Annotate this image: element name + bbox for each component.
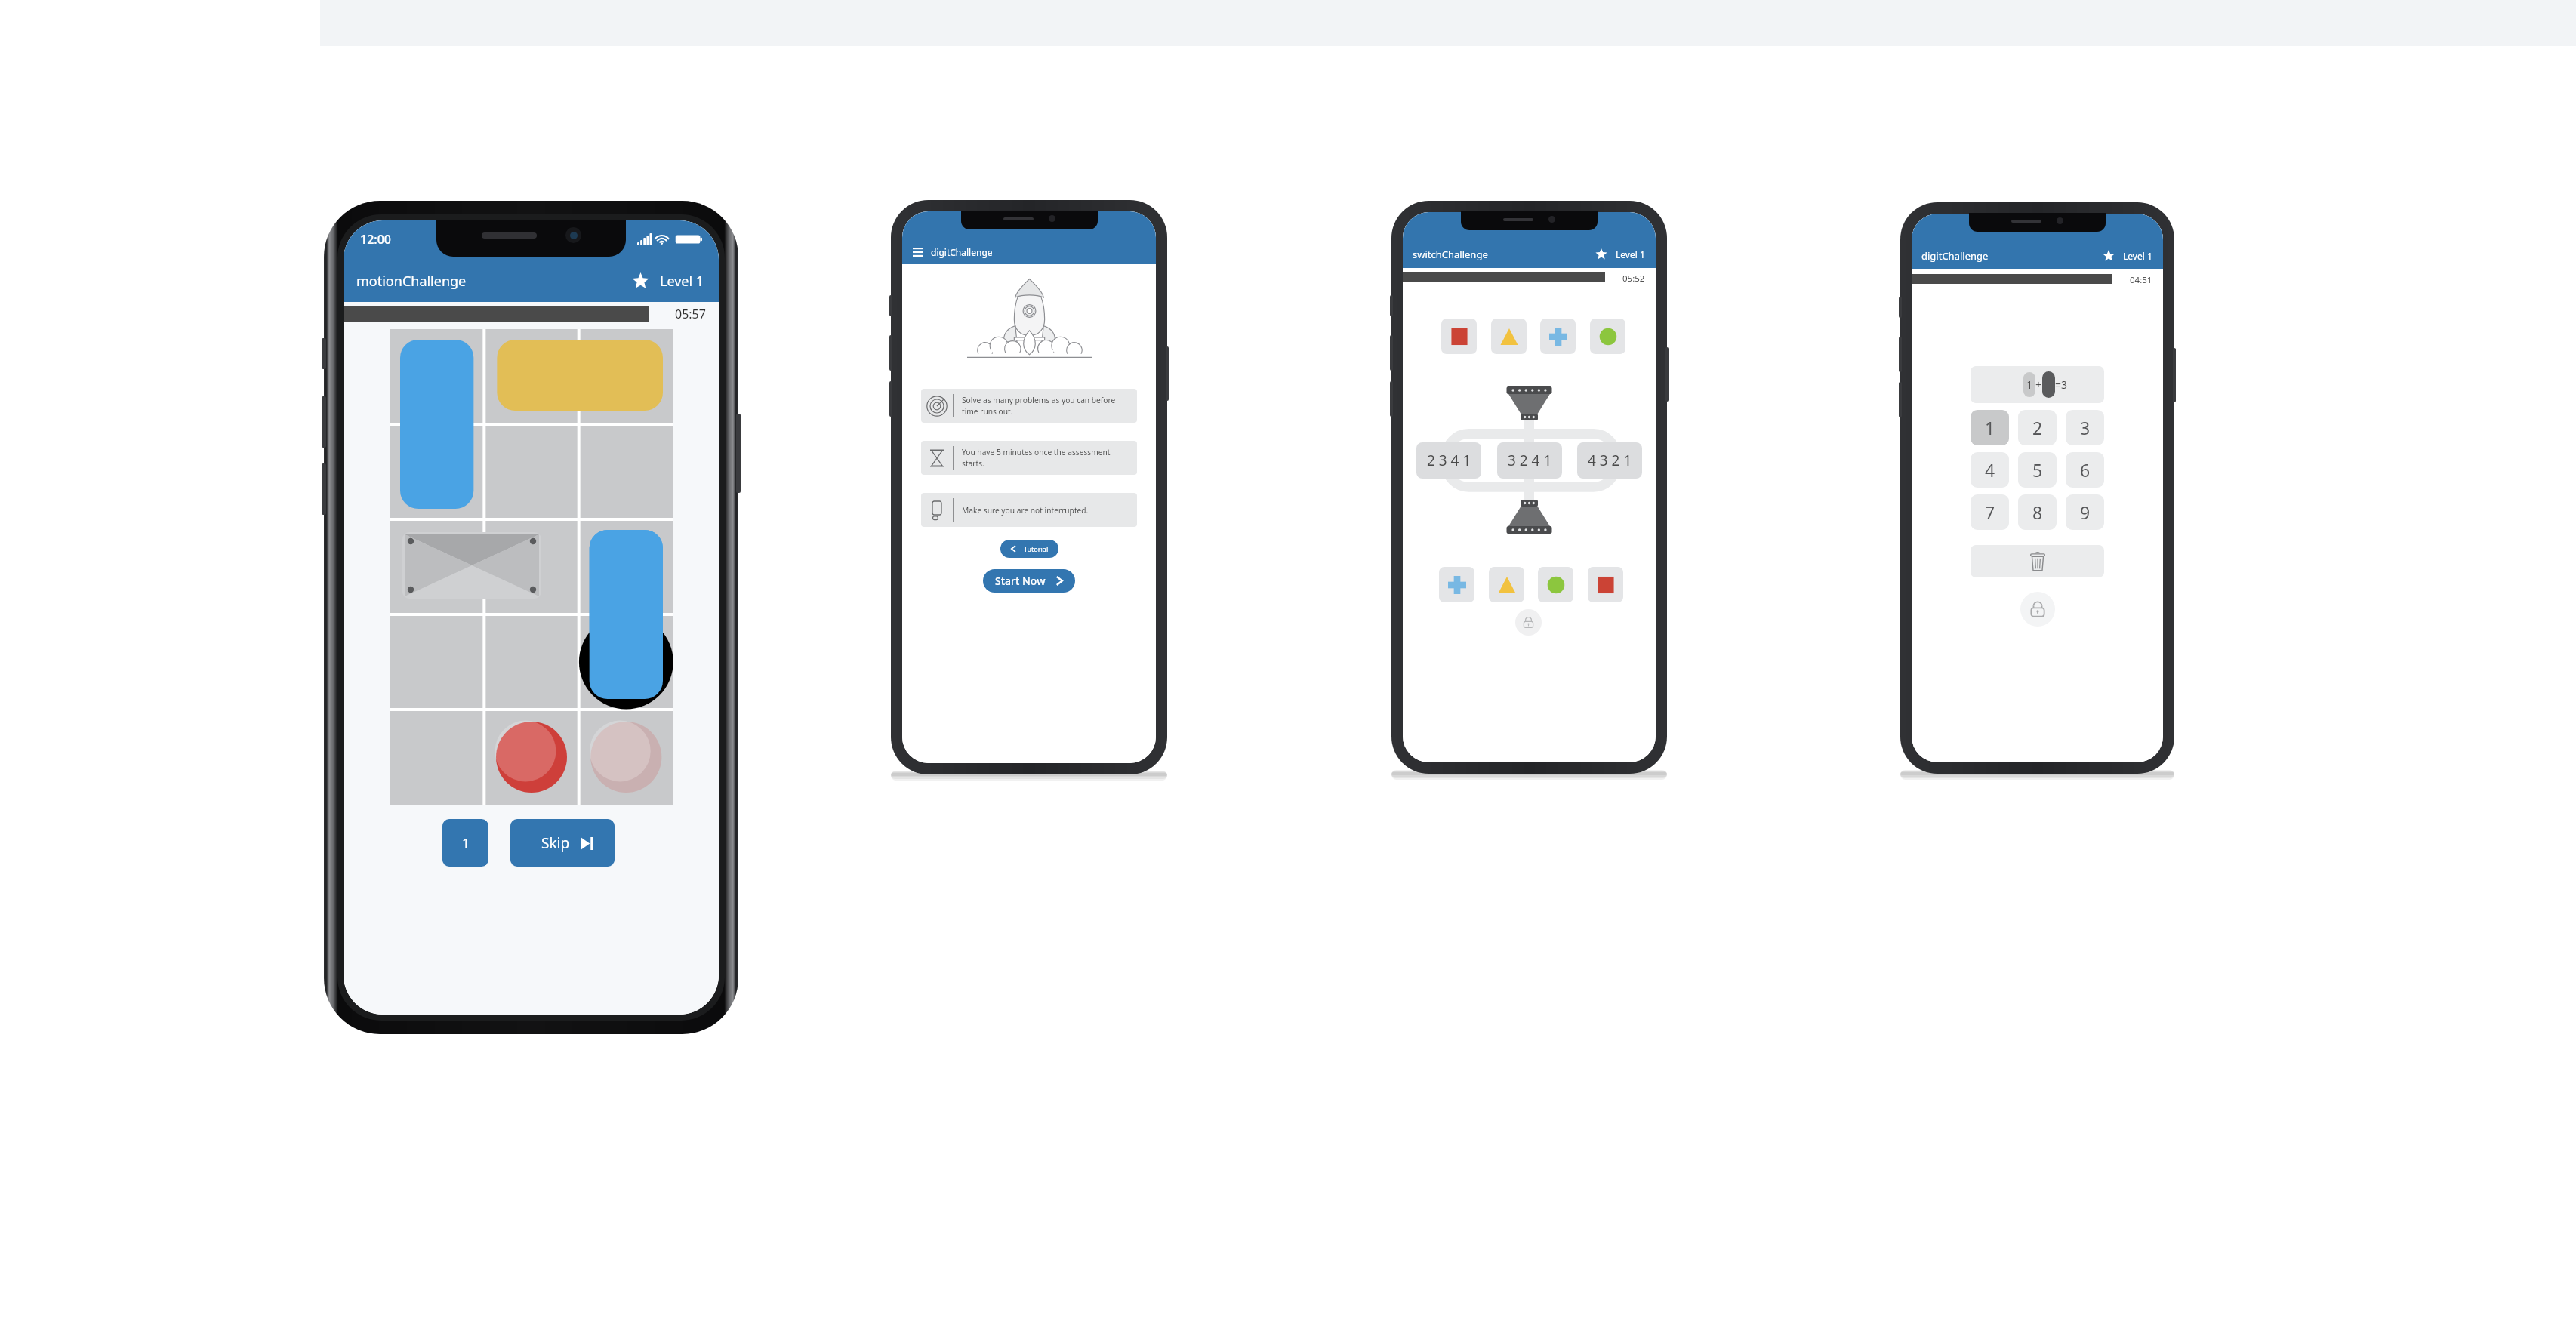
- staticText: 7: [1985, 500, 1995, 524]
- other: Favourite: [2103, 250, 2115, 262]
- staticText: 3: [2080, 416, 2091, 439]
- staticText: Make sure you are not interrupted.: [962, 505, 1131, 516]
- staticText: Level 1: [2123, 250, 2152, 262]
- button[interactable]: 1: [1971, 410, 2009, 445]
- staticText: 4 3 2 1: [1588, 451, 1632, 470]
- button[interactable]: Favourite: [2103, 242, 2152, 269]
- button[interactable]: Menu: [913, 248, 923, 257]
- button[interactable]: 3: [2066, 410, 2104, 445]
- button[interactable]: [1441, 319, 1477, 354]
- staticText: 1: [1985, 416, 1995, 439]
- button[interactable]: 4: [1971, 452, 2009, 488]
- staticText: 5: [2032, 458, 2043, 482]
- staticText: switchChallenge: [1413, 248, 1488, 261]
- button[interactable]: Lock: [2020, 592, 2055, 627]
- staticText: Level 1: [660, 272, 704, 291]
- staticText: 4: [1985, 458, 1995, 482]
- button[interactable]: [1590, 319, 1625, 354]
- button[interactable]: Tutorial: [1000, 540, 1058, 558]
- button[interactable]: Make sure you are not interrupted.: [921, 493, 1137, 527]
- button[interactable]: 4 3 2 1: [1577, 442, 1642, 479]
- staticText: 9: [2080, 500, 2091, 524]
- staticText: Tutorial: [1024, 544, 1049, 553]
- staticText: 05:57: [675, 306, 706, 322]
- staticText: Level 1: [1616, 248, 1645, 260]
- button[interactable]: 8: [2018, 494, 2057, 530]
- button[interactable]: Favourite: [1595, 241, 1645, 268]
- staticText: digitChallenge: [1921, 249, 1989, 263]
- staticText: 2: [2032, 416, 2043, 439]
- staticText: Solve as many problems as you can before…: [962, 395, 1131, 417]
- button[interactable]: [1588, 567, 1623, 602]
- staticText: 1: [462, 834, 470, 851]
- staticText: 6: [2080, 458, 2091, 482]
- button[interactable]: [1538, 567, 1573, 602]
- staticText: 1: [2026, 377, 2033, 392]
- staticText: digitChallenge: [931, 246, 993, 258]
- button[interactable]: You have 5 minutes once the assessment s…: [921, 441, 1137, 475]
- button[interactable]: [1439, 567, 1474, 602]
- button[interactable]: Solve as many problems as you can before…: [921, 389, 1137, 423]
- button[interactable]: [1489, 567, 1524, 602]
- other: Favourite: [1595, 248, 1607, 260]
- button[interactable]: 1: [442, 819, 488, 867]
- other: Favourite: [632, 272, 649, 290]
- staticText: 8: [2032, 500, 2043, 524]
- staticText: 12:00: [360, 231, 391, 248]
- staticText: Start Now: [995, 574, 1046, 588]
- staticText: 2 3 4 1: [1427, 451, 1471, 470]
- button[interactable]: 5: [2018, 452, 2057, 488]
- staticText: Skip: [541, 833, 570, 853]
- button[interactable]: 7: [1971, 494, 2009, 530]
- button[interactable]: Favourite: [632, 260, 704, 302]
- button[interactable]: 2: [2018, 410, 2057, 445]
- button[interactable]: [1491, 319, 1527, 354]
- staticText: +: [2035, 377, 2042, 392]
- button[interactable]: 3 2 4 1: [1497, 442, 1562, 479]
- staticText: 3 2 4 1: [1508, 451, 1552, 470]
- staticText: 05:52: [1622, 272, 1645, 282]
- staticText: motionChallenge: [356, 272, 467, 291]
- button[interactable]: Skip: [510, 819, 615, 867]
- staticText: 04:51: [2130, 274, 2152, 284]
- button[interactable]: 2 3 4 1: [1416, 442, 1481, 479]
- button[interactable]: [1540, 319, 1576, 354]
- button[interactable]: Start Now: [983, 569, 1075, 593]
- staticText: =3: [2055, 377, 2068, 392]
- staticText: You have 5 minutes once the assessment s…: [962, 447, 1131, 469]
- button[interactable]: 9: [2066, 494, 2104, 530]
- button[interactable]: Delete: [1971, 545, 2104, 577]
- button[interactable]: 6: [2066, 452, 2104, 488]
- button[interactable]: Lock: [1515, 609, 1542, 636]
